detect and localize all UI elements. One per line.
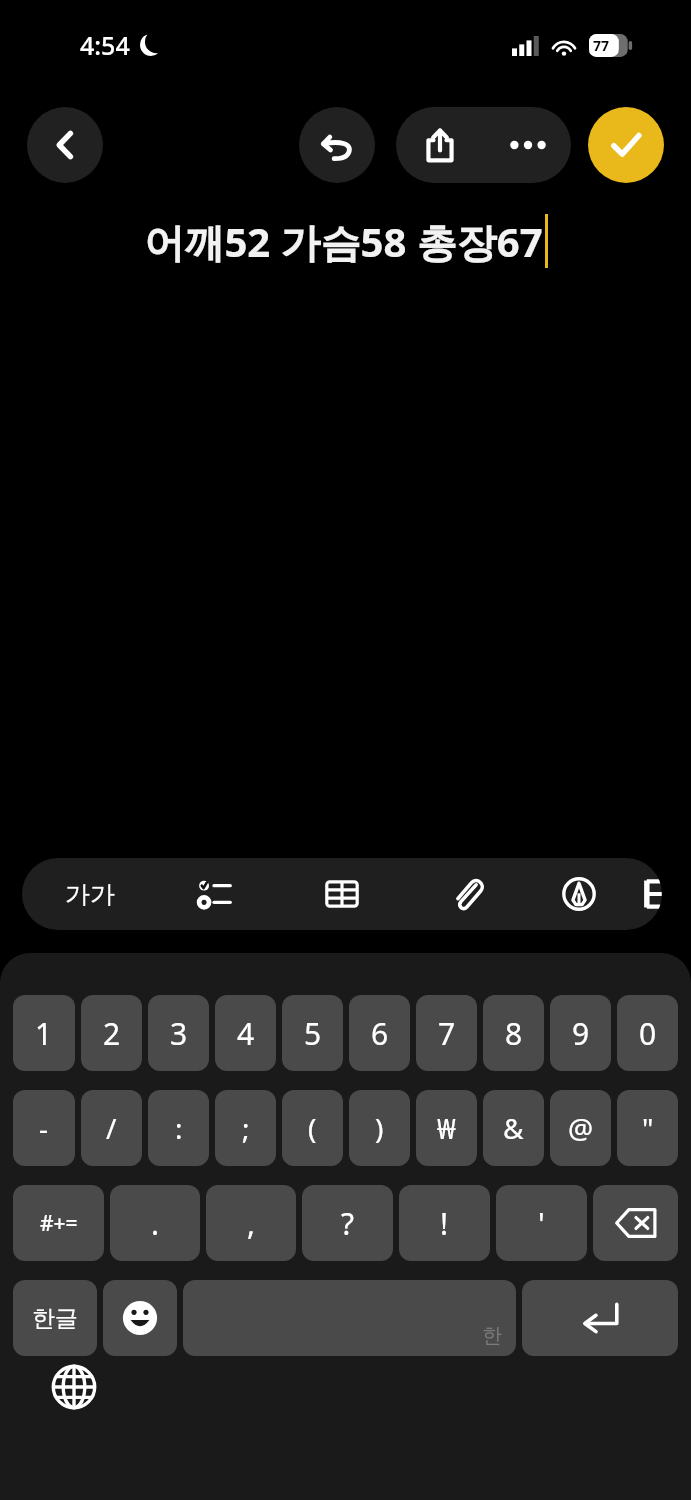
button[interactable]: Checklist <box>172 858 262 930</box>
staticText: 0 <box>639 1013 657 1054</box>
staticText: @ <box>568 1109 594 1147</box>
button[interactable]: Done <box>588 107 664 183</box>
button[interactable]: 5 <box>282 995 343 1071</box>
button[interactable]: #+= <box>13 1185 104 1261</box>
button[interactable]: ? <box>302 1185 393 1261</box>
button[interactable]: ( <box>282 1090 343 1166</box>
staticText: " <box>642 1109 654 1147</box>
staticText: 8 <box>505 1013 523 1054</box>
button[interactable]: Attach <box>422 858 512 930</box>
staticText: 7 <box>438 1013 456 1054</box>
staticText: 77 <box>593 36 610 55</box>
button[interactable]: Draw <box>534 858 624 930</box>
staticText: : <box>175 1109 183 1147</box>
staticText: 6 <box>371 1013 389 1054</box>
staticText: . <box>151 1203 160 1244</box>
button[interactable]: ₩ <box>416 1090 477 1166</box>
staticText: ? <box>341 1203 355 1244</box>
button[interactable]: Enter <box>522 1280 678 1356</box>
button[interactable]: More options <box>484 107 571 183</box>
staticText: 어깨52 가슴58 총장67 <box>144 214 543 269</box>
button[interactable]: " <box>617 1090 678 1166</box>
button[interactable]: 3 <box>148 995 209 1071</box>
button[interactable]: 어깨52 가슴58 총장67 <box>0 208 691 274</box>
button[interactable]: 4 <box>215 995 276 1071</box>
staticText: , <box>247 1203 256 1244</box>
button[interactable]: ! <box>399 1185 490 1261</box>
staticText: 한 <box>482 1323 502 1348</box>
staticText: 2 <box>103 1013 121 1054</box>
button[interactable]: Table <box>297 858 387 930</box>
staticText: ( <box>308 1109 317 1147</box>
button[interactable]: More formatting <box>642 858 662 930</box>
button[interactable]: 가가 <box>40 858 140 930</box>
button[interactable]: , <box>206 1185 296 1261</box>
button[interactable]: : <box>148 1090 209 1166</box>
staticText: ₩ <box>437 1109 456 1147</box>
button[interactable]: ' <box>496 1185 587 1261</box>
button[interactable]: 8 <box>483 995 544 1071</box>
staticText: #+= <box>40 1209 78 1238</box>
staticText: & <box>503 1109 524 1147</box>
button[interactable]: Emoji <box>103 1280 177 1356</box>
staticText: 가가 <box>65 879 115 910</box>
staticText: - <box>39 1109 49 1147</box>
button[interactable]: Space <box>183 1280 516 1356</box>
staticText: 1 <box>35 1013 53 1054</box>
staticText: 5 <box>304 1013 322 1054</box>
button[interactable]: 2 <box>81 995 142 1071</box>
button[interactable]: & <box>483 1090 544 1166</box>
button[interactable]: - <box>13 1090 75 1166</box>
staticText: 한글 <box>32 1304 78 1333</box>
staticText: 9 <box>572 1013 590 1054</box>
button[interactable]: / <box>81 1090 142 1166</box>
button[interactable]: Undo <box>299 107 375 183</box>
button[interactable]: 한글 <box>13 1280 97 1356</box>
staticText: 4:54 <box>80 28 130 62</box>
button[interactable]: 1 <box>13 995 75 1071</box>
button[interactable]: Share <box>396 107 484 183</box>
staticText: 3 <box>170 1013 188 1054</box>
button[interactable]: 7 <box>416 995 477 1071</box>
staticText: ! <box>440 1203 449 1244</box>
button[interactable]: 0 <box>617 995 678 1071</box>
button[interactable]: Change keyboard <box>42 1355 106 1419</box>
button[interactable]: 6 <box>349 995 410 1071</box>
button[interactable]: Backspace <box>593 1185 678 1261</box>
button[interactable]: ; <box>215 1090 276 1166</box>
button[interactable]: ) <box>349 1090 410 1166</box>
button[interactable]: . <box>110 1185 200 1261</box>
button[interactable]: 9 <box>550 995 611 1071</box>
staticText: ; <box>242 1109 250 1147</box>
staticText: ) <box>375 1109 384 1147</box>
staticText: ' <box>538 1203 545 1244</box>
button[interactable]: @ <box>550 1090 611 1166</box>
staticText: 4 <box>237 1013 255 1054</box>
staticText: / <box>106 1109 117 1147</box>
button[interactable]: Back <box>27 107 103 183</box>
